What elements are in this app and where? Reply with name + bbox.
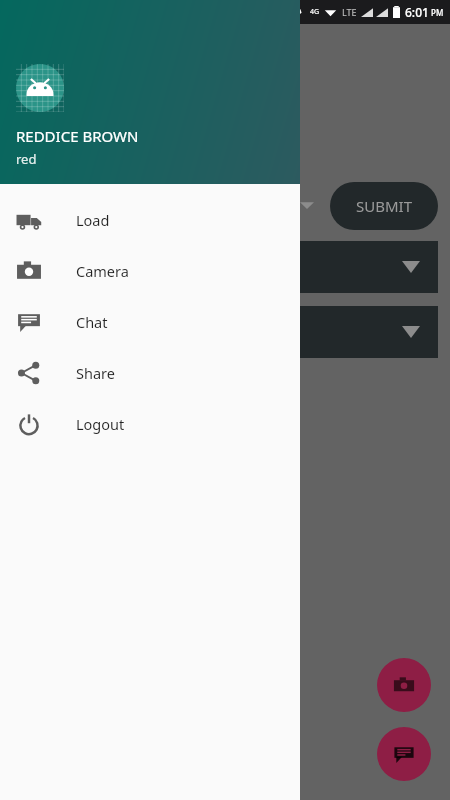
button[interactable]: Chat [0, 296, 300, 347]
staticText: LTE [342, 6, 357, 18]
staticText: REDDICE BROWN [16, 126, 139, 146]
staticText: Share [76, 363, 115, 383]
staticText: SUBMIT [356, 196, 412, 216]
staticText: 4G [310, 7, 320, 17]
button[interactable]: SUBMIT [330, 182, 438, 230]
staticText: 6:01 [405, 4, 429, 20]
staticText: Load [76, 210, 110, 230]
staticText: Camera [76, 261, 129, 281]
button[interactable] [298, 196, 316, 214]
staticText: Chat [76, 312, 108, 332]
button[interactable]: Share [0, 347, 300, 398]
button[interactable]: Camera [0, 245, 300, 296]
button[interactable]: Dropdown [300, 241, 438, 293]
staticText: red [16, 150, 37, 168]
button[interactable]: Camera [377, 658, 431, 712]
staticText: PM [431, 7, 444, 18]
button[interactable]: Chat [377, 727, 431, 781]
button[interactable]: Dropdown [300, 306, 438, 358]
button[interactable]: Load [0, 194, 300, 245]
button[interactable]: Logout [0, 398, 300, 449]
staticText: Logout [76, 414, 125, 434]
